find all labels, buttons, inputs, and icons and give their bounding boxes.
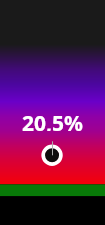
button[interactable]: 20,5%	[0, 109, 105, 131]
staticText: 20,5%	[22, 109, 83, 131]
button[interactable]: Power	[36, 139, 68, 171]
